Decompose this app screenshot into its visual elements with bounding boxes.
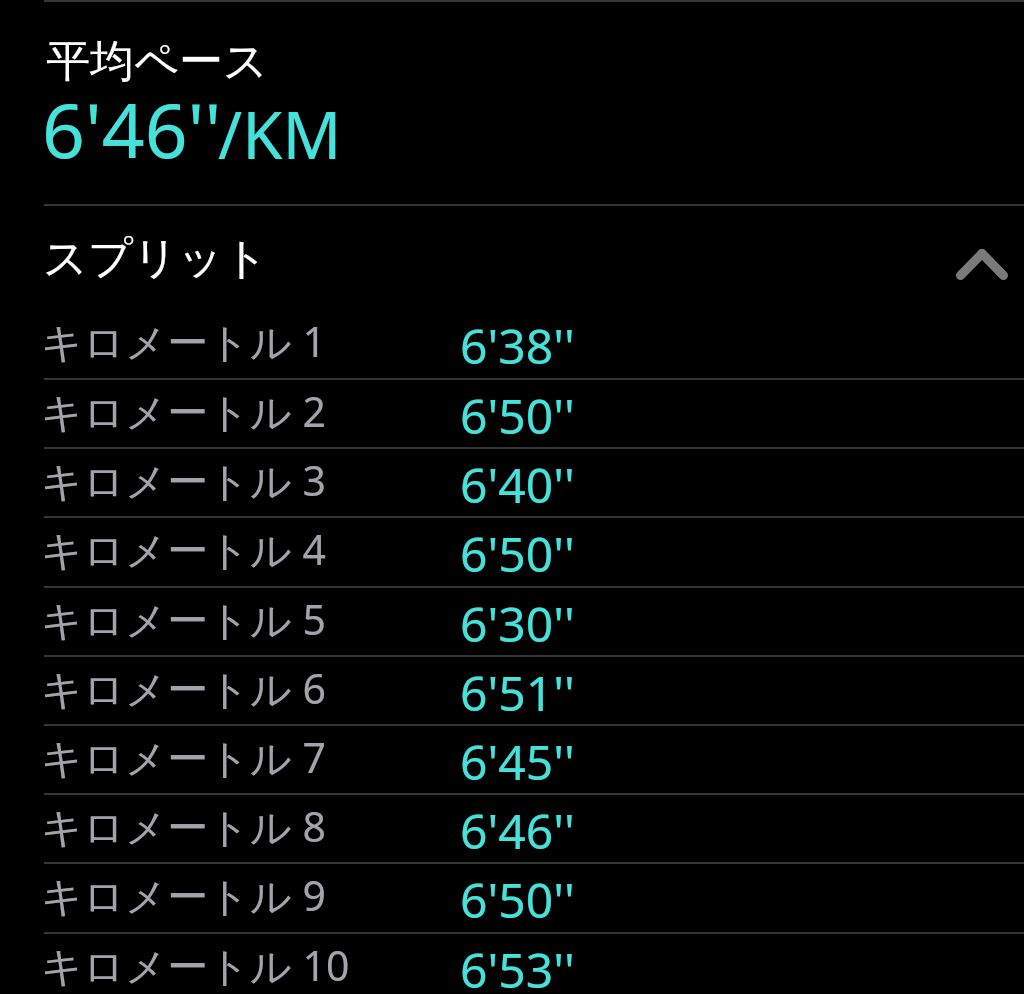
staticText: 6'50'' (460, 867, 575, 932)
button[interactable]: キロメートル 2 (0, 380, 1024, 447)
staticText: 6'51'' (460, 660, 575, 725)
staticText: 6'46'' (42, 78, 222, 180)
button[interactable]: キロメートル 6 (0, 657, 1024, 724)
button[interactable]: キロメートル 8 (0, 795, 1024, 862)
button[interactable]: キロメートル 4 (0, 518, 1024, 586)
staticText: 6'50'' (460, 521, 575, 586)
staticText: 6'40'' (460, 452, 575, 517)
button[interactable]: キロメートル 9 (0, 864, 1024, 932)
button[interactable]: スプリット (0, 206, 1024, 310)
staticText: 6'50'' (460, 383, 575, 448)
button[interactable]: Collapse splits (936, 238, 1024, 318)
button[interactable]: キロメートル 10 (0, 934, 1024, 994)
staticText: キロメートル 6 (41, 660, 326, 716)
staticText: 6'46'' (460, 798, 575, 863)
staticText: 6'30'' (460, 591, 575, 656)
button[interactable]: キロメートル 3 (0, 449, 1024, 516)
staticText: 6'45'' (460, 729, 575, 794)
button[interactable]: キロメートル 5 (0, 588, 1024, 655)
button[interactable]: キロメートル 1 (0, 310, 1024, 378)
staticText: 平均ペース (46, 34, 269, 89)
staticText: キロメートル 10 (41, 937, 350, 993)
staticText: /KM (218, 90, 342, 179)
staticText: キロメートル 8 (41, 798, 326, 854)
staticText: 6'38'' (460, 313, 575, 378)
staticText: スプリット (43, 231, 269, 286)
staticText: キロメートル 9 (41, 867, 326, 923)
staticText: キロメートル 4 (41, 521, 326, 577)
staticText: 6'53'' (460, 937, 575, 994)
staticText: キロメートル 7 (41, 729, 326, 785)
button[interactable]: キロメートル 7 (0, 726, 1024, 793)
staticText: キロメートル 2 (41, 383, 326, 439)
staticText: キロメートル 3 (41, 452, 326, 508)
staticText: キロメートル 5 (41, 591, 326, 647)
staticText: キロメートル 1 (41, 313, 326, 369)
